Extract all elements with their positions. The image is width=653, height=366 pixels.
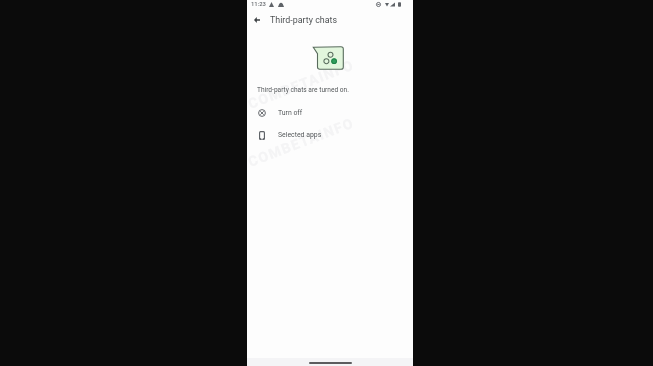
staticText: Turn off: [278, 109, 303, 117]
staticText: Third-party chats: [270, 15, 338, 25]
button[interactable]: Back: [247, 8, 269, 32]
staticText: COMBETAINFO: [247, 114, 357, 170]
staticText: Selected apps: [278, 131, 322, 139]
button[interactable]: Selected apps: [247, 124, 413, 146]
staticText: COMBETAINFO: [247, 56, 357, 112]
staticText: 11:23: [251, 1, 266, 8]
button[interactable]: Turn off: [247, 102, 413, 124]
staticText: Third-party chats are turned on.: [257, 86, 349, 94]
